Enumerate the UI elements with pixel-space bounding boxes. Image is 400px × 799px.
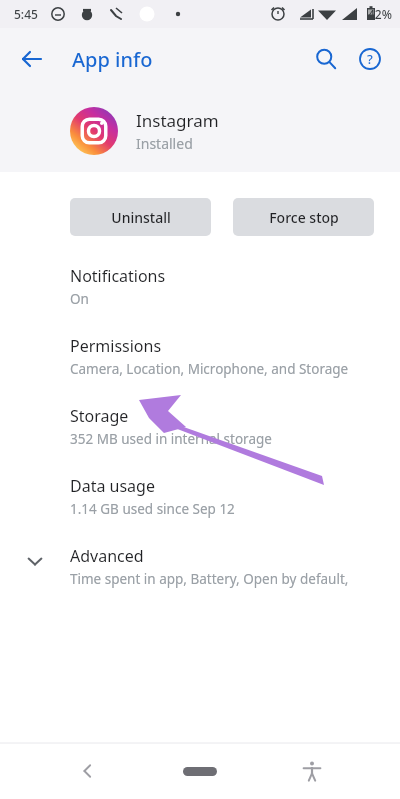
staticText: Time spent in app, Battery, Open by defa… [70, 570, 390, 588]
button[interactable]: Data usage [0, 462, 400, 532]
button[interactable]: Home [170, 751, 230, 791]
staticText: Camera, Location, Microphone, and Storag… [70, 360, 349, 378]
staticText: Uninstall [111, 208, 171, 227]
staticText: On [70, 290, 89, 308]
button[interactable]: Help [348, 37, 392, 81]
staticText: 42% [368, 6, 392, 22]
staticText: Permissions [70, 335, 162, 357]
button[interactable]: Advanced [0, 532, 400, 602]
button[interactable]: Back [8, 35, 56, 83]
staticText: 352 MB used in internal storage [70, 430, 272, 448]
staticText: Installed [136, 134, 193, 153]
staticText: App info [72, 46, 153, 73]
button[interactable]: Instagram [0, 90, 400, 172]
button[interactable]: Notifications [0, 252, 400, 322]
staticText: Advanced [70, 545, 144, 567]
button[interactable]: Back [66, 749, 110, 793]
button[interactable]: Search [304, 37, 348, 81]
staticText: Data usage [70, 475, 155, 497]
staticText: Instagram [136, 109, 219, 132]
button[interactable]: Storage [0, 392, 400, 462]
staticText: 5:45 [14, 6, 38, 22]
button[interactable]: Force stop [233, 198, 374, 236]
staticText: Force stop [269, 208, 339, 227]
button[interactable]: Accessibility [290, 749, 334, 793]
staticText: Notifications [70, 265, 166, 287]
staticText: Storage [70, 405, 129, 427]
staticText: 1.14 GB used since Sep 12 [70, 500, 235, 518]
staticText: ? [367, 50, 373, 68]
button[interactable]: Permissions [0, 322, 400, 392]
button[interactable]: Uninstall [70, 198, 211, 236]
